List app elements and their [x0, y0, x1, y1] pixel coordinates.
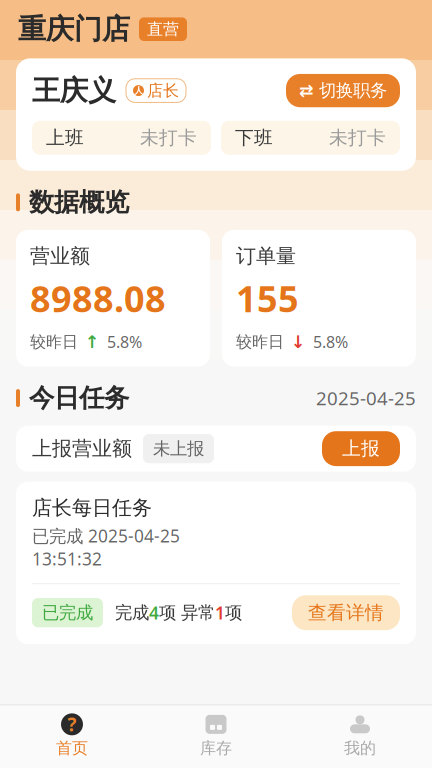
staticText: 5.8% [313, 331, 348, 352]
staticText: 未上报 [153, 438, 204, 459]
staticText: 数据概览 [29, 187, 129, 218]
staticText: 1 [215, 601, 225, 624]
button[interactable]: 上班 [32, 121, 211, 155]
staticText: 店长每日任务 [32, 496, 152, 520]
staticText: 较昨日 [30, 332, 78, 352]
staticText: ↓ [291, 332, 306, 352]
staticText: ⇄ [299, 81, 314, 100]
staticText: 8988.08 [30, 274, 166, 322]
staticText: 重庆门店 [18, 12, 130, 46]
staticText: 下班 [235, 126, 273, 149]
button[interactable]: 订单量 [222, 230, 416, 366]
staticText: 完成 [115, 602, 149, 623]
staticText: 我的 [344, 738, 376, 758]
staticText: 今日任务 [29, 382, 129, 414]
staticText: 4 [149, 601, 159, 624]
staticText: 订单量 [236, 244, 296, 268]
staticText: 查看详情 [308, 601, 384, 624]
button[interactable]: 营业额 [16, 230, 210, 366]
staticText: 上报 [342, 437, 380, 460]
staticText: 较昨日 [236, 332, 284, 352]
staticText: ↑ [85, 332, 100, 352]
staticText: 已完成 2025-04-25 13:51:32 [32, 524, 180, 570]
staticText: 未打卡 [329, 126, 386, 149]
staticText: 库存 [200, 738, 232, 758]
staticText: 上报营业额 [32, 436, 132, 461]
button[interactable]: ? [0, 713, 144, 758]
staticText: 5.8% [107, 331, 142, 352]
button[interactable]: ⇄ [286, 74, 400, 107]
staticText: 未打卡 [140, 126, 197, 149]
staticText: 人 [134, 85, 143, 96]
staticText: 项 异常 [159, 602, 215, 623]
staticText: 项 [225, 602, 242, 623]
button[interactable]: 我的 [288, 713, 432, 758]
button[interactable]: 下班 [221, 121, 400, 155]
staticText: 155 [236, 274, 299, 322]
staticText: 上班 [46, 126, 84, 149]
staticText: 店长 [147, 81, 179, 100]
staticText: 2025-04-25 [316, 386, 416, 410]
button[interactable]: 库存 [144, 713, 288, 758]
staticText: ? [67, 712, 76, 737]
staticText: 首页 [56, 738, 88, 758]
staticText: 切换职务 [319, 80, 387, 101]
button[interactable]: 查看详情 [292, 595, 400, 630]
button[interactable]: 上报 [322, 431, 400, 466]
staticText: 王庆义 [32, 73, 116, 108]
staticText: 直营 [147, 19, 179, 39]
staticText: 已完成 [42, 602, 93, 623]
staticText: 营业额 [30, 244, 90, 268]
